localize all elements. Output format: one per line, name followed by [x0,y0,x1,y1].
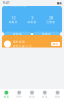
staticText: 限时优惠 [13,40,25,44]
staticText: 待发货 [27,20,36,24]
button[interactable]: 首页 [0,89,13,100]
staticText: 我的 [55,95,61,98]
staticText: 寄件 [16,95,22,98]
staticText: 已签收 [46,20,55,24]
staticText: 首页 [3,95,9,98]
staticText: 寄件立减 5 元 [13,44,32,48]
staticText: 发现 [42,95,48,98]
staticText: 查询 [29,95,35,98]
button[interactable]: 寄快递 [4,32,31,37]
staticText: 查物流 [42,33,51,36]
staticText: 28 [49,15,53,20]
staticText: 9:41 [3,1,10,5]
button[interactable]: 查询 [26,89,38,100]
staticText: 寄快递 [13,33,22,36]
button[interactable]: 领取 [51,42,60,46]
staticText: 领取 [52,42,58,46]
staticText: 待取件 [9,20,18,24]
staticText: 3 [31,15,33,20]
staticText: 我的快递 [10,2,26,7]
staticText: ▮▮ ▮ [57,1,61,4]
button[interactable]: 发现 [38,89,51,100]
staticText: 12 [11,15,15,20]
button[interactable]: 我的 [51,89,64,100]
button[interactable]: 查物流 [33,32,60,37]
button[interactable]: 寄件 [13,89,26,100]
